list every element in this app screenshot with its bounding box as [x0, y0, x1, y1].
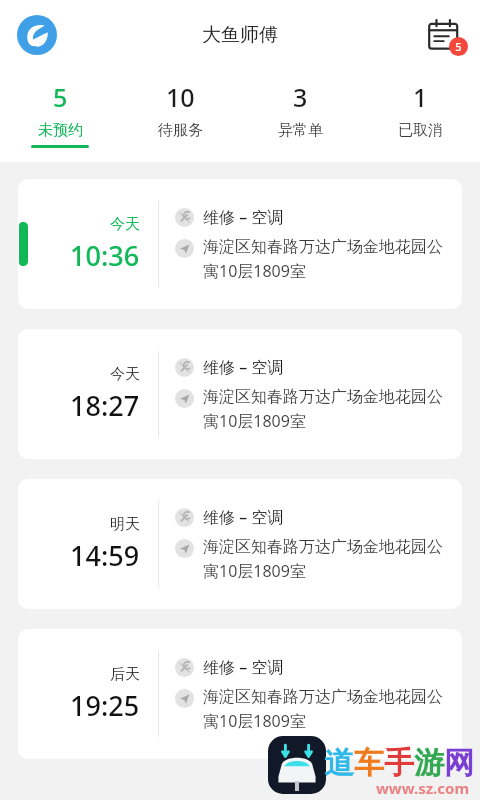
button[interactable]: 3 — [240, 70, 360, 154]
staticText: 14:59 — [70, 537, 140, 574]
button[interactable]: App logo — [16, 14, 58, 56]
staticText: 今天 — [110, 215, 140, 234]
staticText: 3 — [293, 80, 308, 114]
button[interactable]: 今天 — [18, 329, 462, 459]
button[interactable]: 后天 — [18, 629, 462, 759]
staticText: 维修 – 空调 — [203, 506, 284, 528]
button[interactable]: 今天 — [18, 179, 462, 309]
staticText: 游 — [414, 744, 444, 782]
staticText: www.sz.com — [376, 778, 470, 798]
staticText: 道 — [324, 744, 354, 782]
staticText: 海淀区知春路万达广场金地花园公寓10层1809室 — [203, 387, 454, 432]
staticText: 10 — [166, 80, 195, 114]
staticText: 10:36 — [70, 237, 140, 274]
staticText: 明天 — [110, 515, 140, 534]
staticText: 维修 – 空调 — [203, 356, 284, 378]
staticText: 待服务 — [158, 121, 203, 140]
button[interactable]: 明天 — [18, 479, 462, 609]
staticText: 海淀区知春路万达广场金地花园公寓10层1809室 — [203, 237, 454, 282]
staticText: 未预约 — [38, 121, 83, 140]
button[interactable]: 5 — [0, 70, 120, 154]
staticText: 大鱼师傅 — [202, 23, 278, 47]
staticText: 1 — [413, 80, 428, 114]
staticText: 海淀区知春路万达广场金地花园公寓10层1809室 — [203, 687, 454, 732]
button[interactable]: 10 — [120, 70, 240, 154]
button[interactable]: Schedule — [422, 13, 466, 57]
staticText: 异常单 — [278, 121, 323, 140]
staticText: 已取消 — [398, 121, 443, 140]
staticText: 19:25 — [70, 687, 140, 724]
staticText: 今天 — [110, 365, 140, 384]
staticText: 维修 – 空调 — [203, 206, 284, 228]
staticText: 海淀区知春路万达广场金地花园公寓10层1809室 — [203, 537, 454, 582]
staticText: 18:27 — [70, 387, 140, 424]
staticText: 维修 – 空调 — [203, 656, 284, 678]
staticText: 手 — [384, 744, 414, 782]
button[interactable]: 1 — [360, 70, 480, 154]
staticText: 5 — [455, 39, 462, 54]
staticText: 车 — [354, 744, 384, 782]
staticText: 5 — [53, 80, 68, 114]
staticText: 后天 — [110, 665, 140, 684]
staticText: 网 — [444, 744, 474, 782]
